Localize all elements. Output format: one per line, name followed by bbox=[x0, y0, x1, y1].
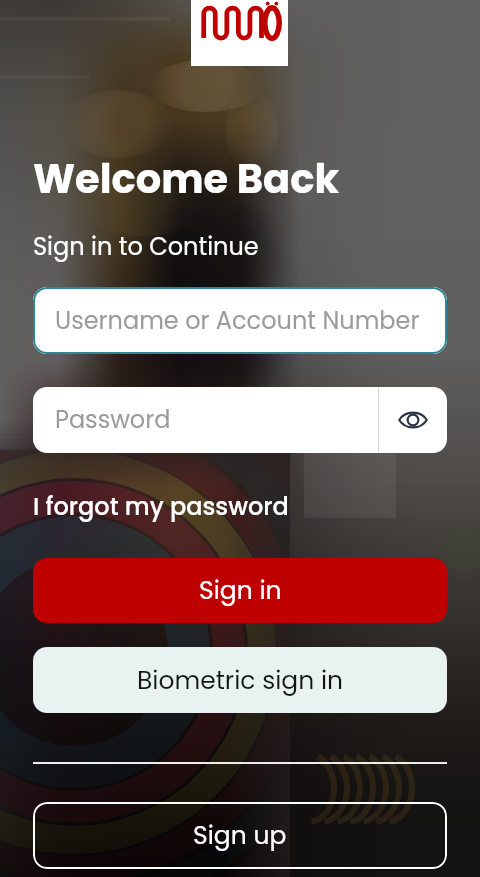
staticText: Sign in bbox=[199, 573, 282, 608]
staticText: Sign in to Continue bbox=[33, 230, 259, 264]
staticText: Username or Account Number bbox=[55, 304, 420, 338]
button[interactable]: Password bbox=[33, 387, 378, 453]
button[interactable]: Show password bbox=[379, 387, 447, 453]
staticText: I forgot my password bbox=[33, 490, 289, 524]
button[interactable]: Sign in bbox=[33, 558, 447, 623]
staticText: Sign up bbox=[193, 818, 287, 853]
staticText: Welcome Back bbox=[33, 151, 340, 207]
staticText: Password bbox=[55, 403, 171, 437]
staticText: Biometric sign in bbox=[137, 663, 344, 698]
button[interactable]: Username or Account Number bbox=[33, 287, 447, 354]
button[interactable]: I forgot my password bbox=[33, 490, 289, 524]
button[interactable]: Biometric sign in bbox=[33, 647, 447, 713]
button[interactable]: nmo logo bbox=[191, 0, 288, 66]
button[interactable]: Sign up bbox=[33, 802, 447, 869]
